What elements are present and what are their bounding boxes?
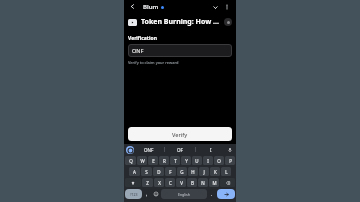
staticText: .: [211, 191, 213, 197]
staticText: M: [212, 180, 217, 186]
staticText: W: [140, 158, 145, 164]
button[interactable]: Period: [208, 189, 216, 199]
staticText: Z: [146, 180, 149, 186]
button[interactable]: Blum: [143, 3, 164, 11]
button[interactable]: B: [187, 178, 197, 187]
button[interactable]: D: [153, 167, 164, 176]
button[interactable]: L: [221, 167, 231, 176]
button[interactable]: Z: [142, 178, 153, 187]
button[interactable]: P: [225, 156, 235, 165]
staticText: I: [210, 147, 212, 153]
button[interactable]: ?123: [125, 189, 142, 199]
staticText: Token Burning: How &...: [141, 17, 221, 27]
staticText: T: [174, 158, 177, 164]
button[interactable]: English: [161, 189, 207, 199]
staticText: I: [207, 158, 209, 164]
button[interactable]: Back: [128, 2, 137, 11]
button[interactable]: R: [159, 156, 169, 165]
staticText: ONF: [144, 147, 154, 153]
button[interactable]: ONF: [134, 144, 164, 155]
staticText: R: [163, 158, 166, 164]
staticText: D: [157, 169, 161, 175]
staticText: English: [178, 192, 190, 197]
button[interactable]: Shift: [125, 178, 141, 187]
button[interactable]: H: [188, 167, 198, 176]
button[interactable]: J: [199, 167, 209, 176]
staticText: K: [214, 169, 217, 175]
staticText: V: [180, 180, 183, 186]
button[interactable]: More options: [222, 2, 232, 12]
button[interactable]: F: [165, 167, 176, 176]
staticText: P: [229, 158, 232, 164]
staticText: U: [195, 158, 199, 164]
button[interactable]: K: [210, 167, 220, 176]
button[interactable]: I: [196, 144, 226, 155]
staticText: ,: [146, 191, 148, 197]
button[interactable]: U: [192, 156, 202, 165]
button[interactable]: C: [165, 178, 175, 187]
button[interactable]: O: [214, 156, 224, 165]
staticText: Y: [185, 158, 188, 164]
staticText: J: [203, 169, 205, 175]
button[interactable]: ONF: [128, 44, 232, 57]
button[interactable]: Y: [181, 156, 191, 165]
button[interactable]: W: [137, 156, 147, 165]
button[interactable]: Token Burning: How &...: [128, 13, 232, 31]
button[interactable]: Voice input: [226, 146, 234, 154]
button[interactable]: Google: [126, 146, 134, 154]
button[interactable]: A: [129, 167, 140, 176]
button[interactable]: Q: [125, 156, 136, 165]
staticText: ?123: [130, 192, 138, 197]
button[interactable]: X: [154, 178, 164, 187]
staticText: G: [180, 169, 184, 175]
staticText: E: [152, 158, 155, 164]
staticText: H: [191, 169, 195, 175]
button[interactable]: Account: [224, 18, 232, 26]
button[interactable]: OF: [165, 144, 195, 155]
button[interactable]: S: [141, 167, 152, 176]
staticText: B: [191, 180, 194, 186]
staticText: A: [133, 169, 136, 175]
staticText: ONF: [132, 47, 144, 54]
staticText: Blum: [143, 3, 159, 11]
button[interactable]: Enter: [217, 189, 235, 199]
button[interactable]: E: [148, 156, 158, 165]
staticText: N: [201, 180, 205, 186]
staticText: S: [145, 169, 148, 175]
button[interactable]: M: [209, 178, 219, 187]
staticText: Q: [129, 158, 133, 164]
button[interactable]: Comma: [143, 189, 150, 199]
staticText: Verification: [128, 35, 157, 42]
staticText: F: [169, 169, 172, 175]
button[interactable]: N: [198, 178, 208, 187]
button[interactable]: Collapse: [210, 2, 220, 12]
button[interactable]: G: [177, 167, 187, 176]
button[interactable]: Verify: [128, 127, 232, 141]
staticText: OF: [177, 147, 183, 153]
button[interactable]: I: [203, 156, 213, 165]
button[interactable]: V: [176, 178, 186, 187]
staticText: Verify: [172, 131, 188, 138]
staticText: O: [217, 158, 221, 164]
staticText: C: [169, 180, 172, 186]
staticText: Verify to claim your reward: [128, 60, 179, 65]
button[interactable]: Emoji: [151, 189, 160, 199]
staticText: L: [225, 169, 228, 175]
button[interactable]: Backspace: [220, 178, 235, 187]
staticText: X: [158, 180, 161, 186]
button[interactable]: T: [170, 156, 180, 165]
